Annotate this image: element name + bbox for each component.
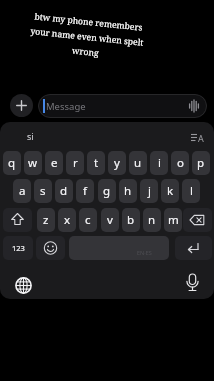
button[interactable]: m — [164, 208, 182, 232]
button[interactable]: f — [76, 179, 94, 203]
staticText: Message — [46, 100, 86, 113]
button[interactable]: l — [182, 179, 200, 203]
button[interactable] — [10, 94, 33, 117]
button[interactable]: w — [24, 151, 42, 175]
button[interactable]: q — [3, 151, 21, 175]
staticText: h — [124, 183, 132, 199]
button[interactable]: u — [129, 151, 147, 175]
staticText: r — [73, 155, 78, 171]
staticText: z — [43, 212, 49, 228]
staticText: d — [60, 183, 68, 199]
button[interactable]: j — [140, 179, 158, 203]
button[interactable]: r — [66, 151, 84, 175]
button[interactable]: v — [101, 208, 119, 232]
button[interactable] — [15, 277, 32, 294]
staticText: x — [64, 212, 71, 228]
button[interactable]: c — [79, 208, 97, 232]
button[interactable] — [36, 236, 65, 260]
button[interactable]: h — [119, 179, 137, 203]
button[interactable] — [3, 208, 32, 232]
staticText: m — [168, 212, 179, 228]
button[interactable]: t — [87, 151, 105, 175]
button[interactable] — [183, 208, 212, 232]
button[interactable]: s — [34, 179, 52, 203]
staticText: j — [148, 183, 151, 199]
staticText: w — [28, 155, 38, 171]
button[interactable] — [175, 236, 212, 260]
staticText: v — [107, 212, 113, 228]
staticText: k — [167, 183, 174, 199]
staticText: o — [177, 155, 184, 171]
staticText: g — [103, 183, 111, 199]
staticText: u — [134, 155, 142, 171]
staticText: A — [198, 132, 204, 144]
button[interactable]: e — [45, 151, 63, 175]
staticText: s — [40, 183, 46, 199]
staticText: y — [114, 155, 120, 171]
staticText: t — [94, 155, 99, 171]
button[interactable]: k — [161, 179, 179, 203]
button[interactable]: y — [108, 151, 126, 175]
button[interactable]: a — [13, 179, 31, 203]
button[interactable]: b — [122, 208, 140, 232]
staticText: b — [127, 212, 135, 228]
staticText: a — [19, 183, 26, 199]
staticText: i — [158, 155, 161, 171]
button[interactable]: i — [150, 151, 168, 175]
staticText: btw my phone remembers your name even wh… — [0, 7, 177, 66]
button[interactable]: p — [192, 151, 210, 175]
staticText: n — [148, 212, 156, 228]
staticText: q — [8, 155, 16, 171]
button[interactable]: g — [98, 179, 116, 203]
staticText: c — [85, 212, 91, 228]
button[interactable]: Message — [38, 94, 207, 118]
button[interactable]: A — [190, 130, 208, 146]
button[interactable] — [185, 273, 200, 293]
button[interactable]: n — [143, 208, 161, 232]
staticText: p — [197, 155, 205, 171]
staticText: 123 — [12, 243, 25, 253]
staticText: EN·ES — [137, 249, 152, 256]
staticText: f — [83, 183, 87, 199]
button[interactable]: x — [58, 208, 76, 232]
staticText: e — [51, 155, 58, 171]
button[interactable]: si — [27, 130, 34, 142]
staticText: l — [190, 183, 193, 199]
button[interactable]: 123 — [3, 236, 33, 260]
button[interactable]: d — [55, 179, 73, 203]
button[interactable]: o — [171, 151, 189, 175]
button[interactable]: z — [37, 208, 55, 232]
